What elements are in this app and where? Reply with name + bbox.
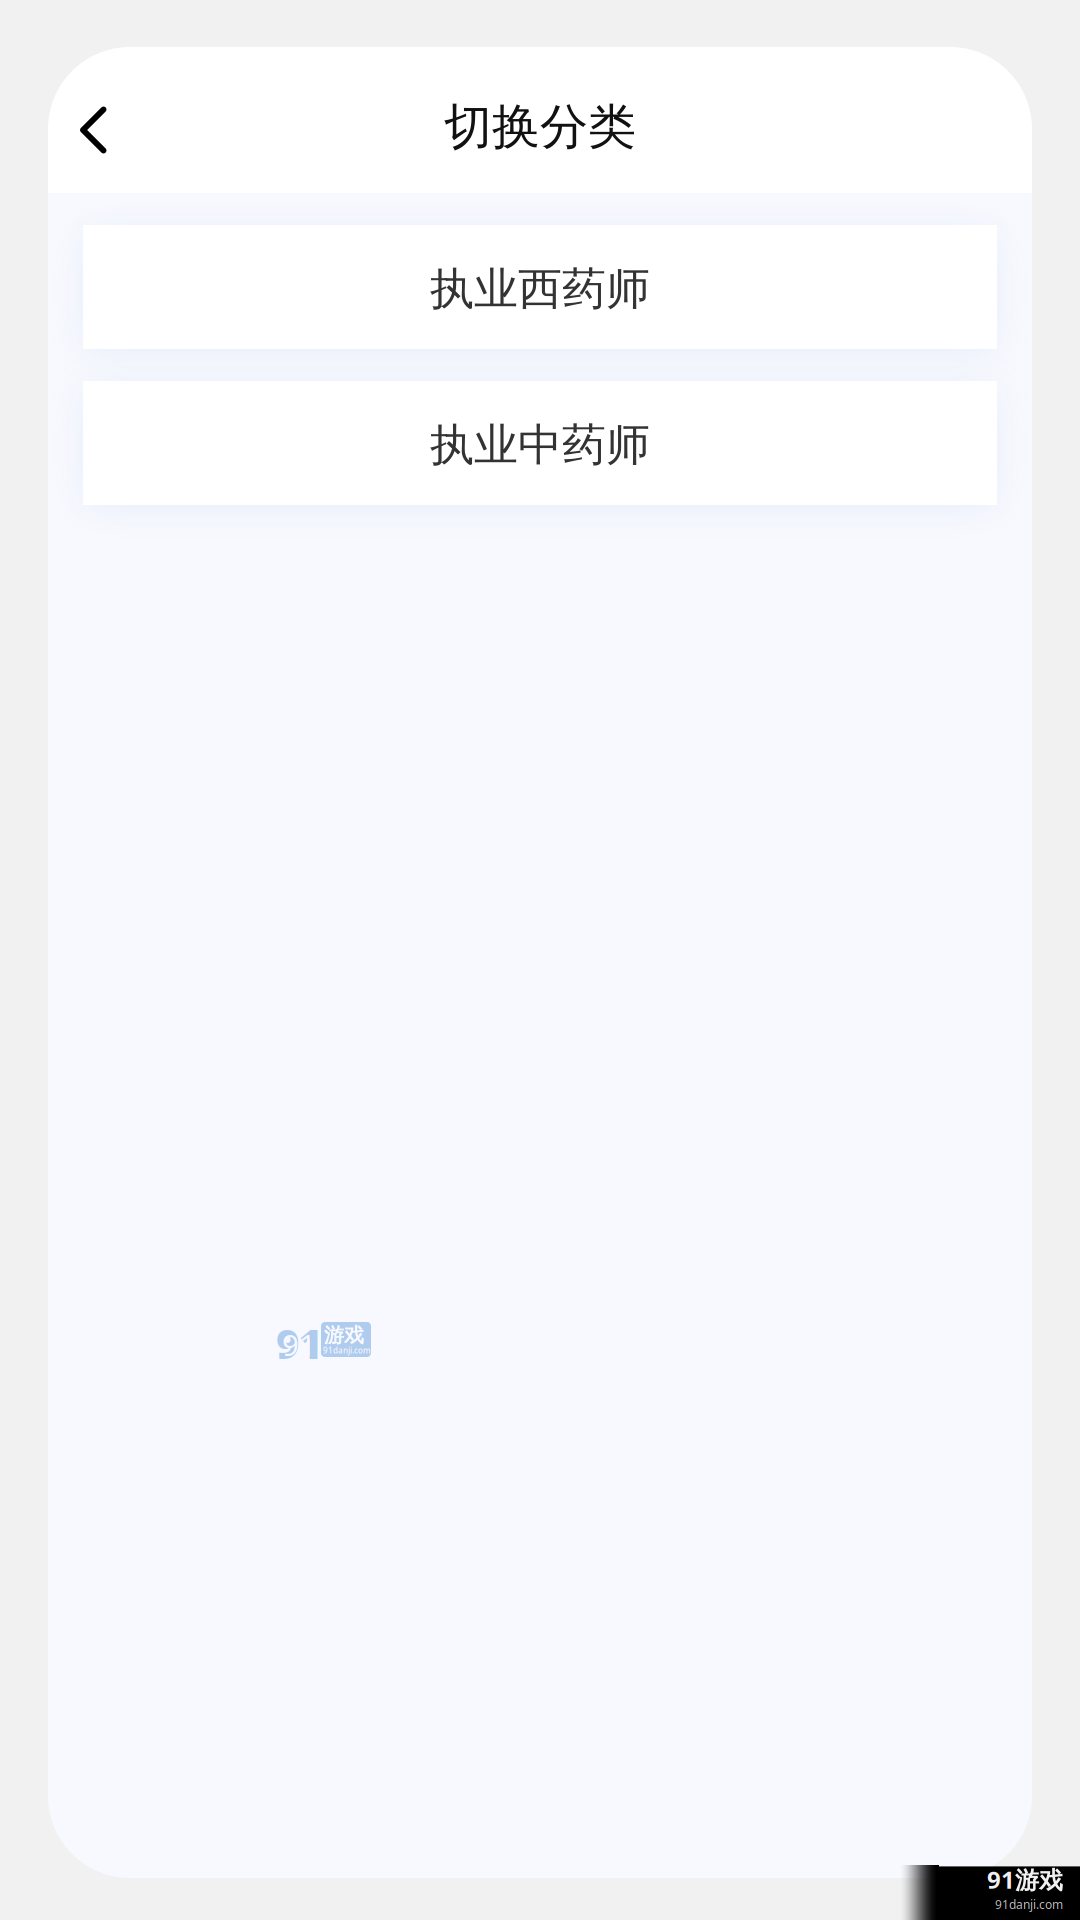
button[interactable]: 执业中药师 <box>83 381 997 505</box>
staticText: 91danji.com <box>323 1345 371 1356</box>
staticText: 91 <box>282 1325 316 1364</box>
button[interactable]: Back <box>45 82 141 178</box>
button[interactable]: 执业西药师 <box>83 225 997 349</box>
staticText: 91danji.com <box>995 1896 1063 1912</box>
staticText: 执业西药师 <box>430 262 650 316</box>
staticText: 91 <box>276 1317 322 1370</box>
staticText: 91游戏 <box>987 1864 1063 1895</box>
staticText: 执业中药师 <box>430 418 650 472</box>
staticText: 游戏 <box>324 1323 364 1348</box>
staticText: 切换分类 <box>444 97 636 156</box>
